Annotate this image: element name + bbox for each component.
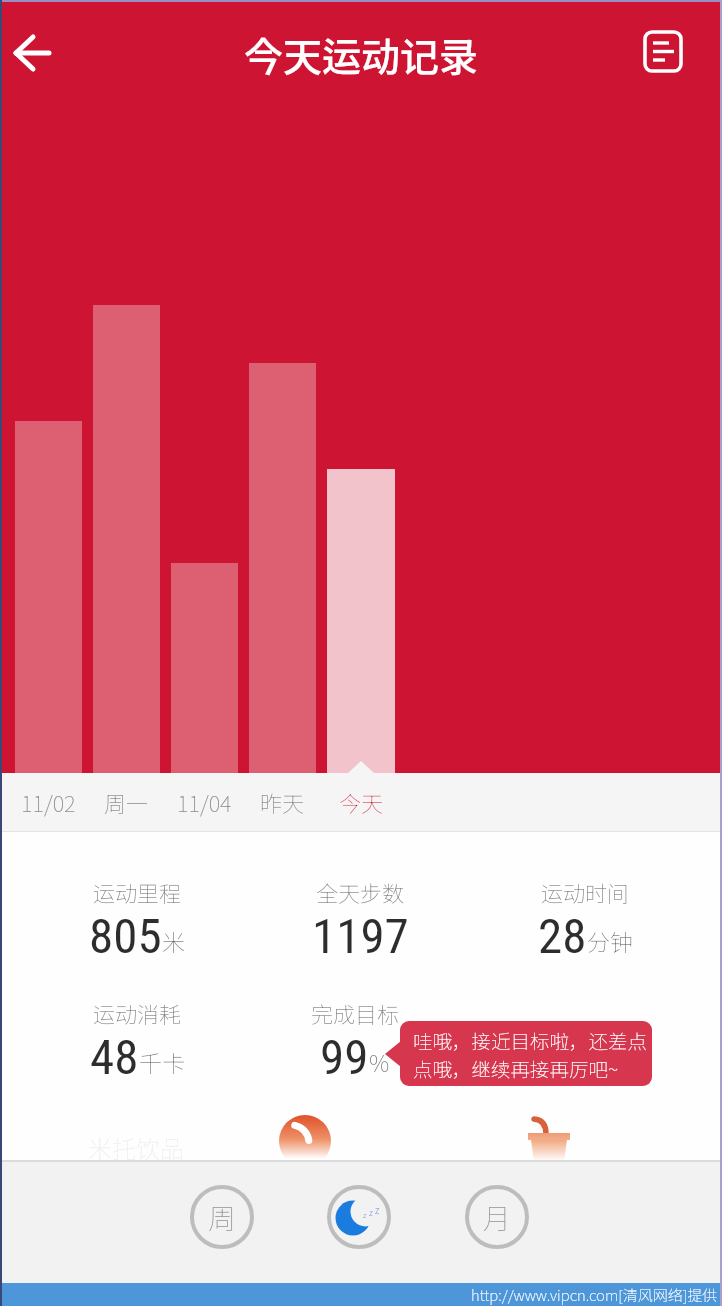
staticText: 48 bbox=[90, 1029, 139, 1086]
staticText: 全天步数 bbox=[316, 876, 405, 904]
staticText: 11/04 bbox=[177, 786, 232, 818]
button[interactable]: 昨天 bbox=[243, 773, 321, 831]
staticText: 点哦，继续再接再厉吧~ bbox=[413, 1054, 619, 1082]
staticText: z bbox=[363, 1209, 367, 1221]
button[interactable] bbox=[633, 21, 693, 81]
button[interactable]: 周 bbox=[190, 1185, 254, 1249]
staticText: 米 bbox=[162, 924, 185, 957]
staticText: 28 bbox=[538, 908, 587, 965]
button[interactable] bbox=[4, 22, 64, 82]
button[interactable]: 11/04 bbox=[165, 773, 243, 831]
button[interactable]: 周一 bbox=[87, 773, 165, 831]
staticText: 运动消耗 bbox=[93, 997, 182, 1025]
staticText: % bbox=[369, 1045, 390, 1078]
staticText: 千卡 bbox=[139, 1045, 185, 1078]
staticText: 1197 bbox=[312, 908, 409, 965]
button[interactable]: 哇哦，接近目标啦，还差点 bbox=[400, 1021, 652, 1086]
staticText: 805 bbox=[89, 908, 162, 965]
staticText: 运动时间 bbox=[541, 876, 630, 904]
staticText: 99 bbox=[320, 1029, 369, 1086]
button[interactable]: 今天 bbox=[322, 773, 400, 831]
staticText: 今天运动记录 bbox=[244, 26, 479, 78]
staticText: 完成目标 bbox=[311, 997, 400, 1025]
staticText: 11/02 bbox=[21, 786, 76, 818]
staticText: 周 bbox=[208, 1197, 237, 1238]
staticText: z bbox=[375, 1202, 380, 1216]
staticText: 周一 bbox=[104, 786, 149, 818]
staticText: 米托饮品 bbox=[88, 1130, 184, 1165]
staticText: 月 bbox=[483, 1197, 512, 1238]
button[interactable]: 11/02 bbox=[9, 773, 87, 831]
staticText: 运动里程 bbox=[93, 876, 182, 904]
staticText: 哇哦，接近目标啦，还差点 bbox=[413, 1026, 648, 1054]
staticText: 昨天 bbox=[260, 786, 305, 818]
staticText: 今天 bbox=[339, 786, 384, 818]
staticText: http://www.vipcn.com[清风网络]提供 bbox=[471, 1284, 718, 1306]
staticText: z bbox=[369, 1206, 373, 1219]
button[interactable]: z bbox=[327, 1185, 391, 1249]
staticText: 分钟 bbox=[587, 924, 633, 957]
button[interactable]: 月 bbox=[465, 1185, 529, 1249]
